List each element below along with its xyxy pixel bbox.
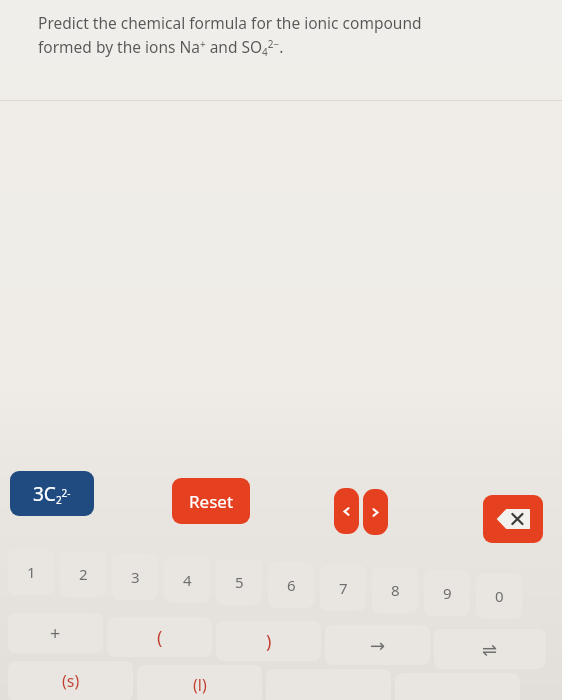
button[interactable]: 5 [216, 559, 262, 605]
button[interactable]: ) [216, 621, 321, 661]
staticText: Predict the chemical formula for the ion… [38, 12, 422, 33]
button[interactable]: (s) [8, 661, 133, 700]
staticText: 1 [27, 562, 36, 582]
staticText: (s) [62, 670, 80, 692]
staticText: ) [266, 629, 272, 654]
staticText: 4 [183, 570, 192, 590]
button[interactable]: Reset [172, 478, 250, 524]
staticText: 3C22- [33, 481, 71, 507]
button[interactable]: 2 [60, 551, 106, 597]
button[interactable]: 0 [476, 573, 522, 619]
button[interactable]: (l) [137, 665, 262, 700]
button[interactable]: ( [107, 617, 212, 657]
staticText: formed by the ions Na+ and SO42−. [38, 36, 284, 58]
staticText: 7 [339, 578, 348, 598]
staticText: → [370, 635, 386, 656]
button[interactable]: 6 [268, 562, 314, 608]
staticText: 9 [443, 583, 452, 603]
button[interactable]: 1 [8, 549, 54, 595]
button[interactable]: Yields arrow [325, 625, 430, 665]
button[interactable]: 8 [372, 567, 418, 613]
staticText: 3 [131, 567, 140, 587]
staticText: ( [157, 625, 163, 650]
button[interactable]: 7 [320, 565, 366, 611]
staticText: ⇌ [482, 639, 498, 660]
button[interactable]: Equilibrium [434, 629, 546, 669]
button[interactable]: 9 [424, 570, 470, 616]
staticText: (l) [193, 674, 207, 696]
button[interactable]: + [8, 613, 103, 653]
staticText: 6 [287, 575, 296, 595]
button[interactable]: Next [363, 489, 388, 535]
staticText: 0 [495, 586, 504, 606]
staticText: 2 [79, 564, 88, 584]
button[interactable]: Backspace [483, 495, 543, 543]
button[interactable]: 3C22- [10, 471, 94, 516]
button[interactable]: Previous [334, 488, 359, 534]
staticText: 5 [235, 572, 244, 592]
button[interactable]: 3 [112, 554, 158, 600]
staticText: + [50, 621, 61, 646]
button[interactable]: 4 [164, 557, 210, 603]
staticText: Reset [189, 490, 234, 513]
staticText: 8 [391, 580, 400, 600]
